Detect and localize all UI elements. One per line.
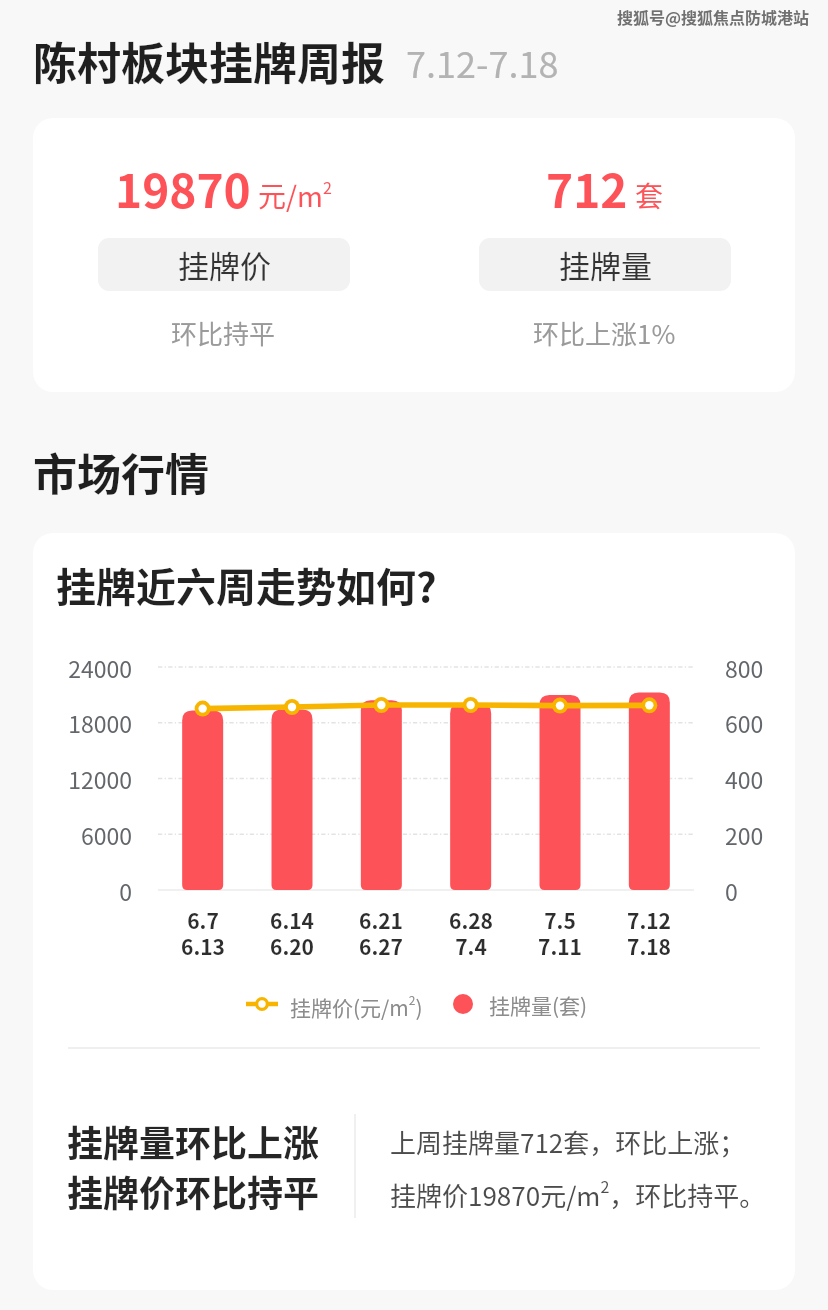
button[interactable]: 挂牌量 (479, 238, 731, 291)
staticText: 挂牌价19870元/m2，环比持平。 (390, 1174, 766, 1213)
staticText: 24000 (36, 651, 132, 684)
staticText: 7.5 (500, 905, 620, 935)
staticText: 市场行情 (33, 440, 209, 504)
staticText: 挂牌近六周走势如何? (56, 556, 437, 614)
staticText: 上周挂牌量712套，环比上涨； (390, 1123, 746, 1161)
staticText: 挂牌价(元/m2) (290, 991, 423, 1022)
button[interactable]: 挂牌价 (98, 238, 350, 291)
staticText: 7.12 (589, 905, 709, 935)
staticText: 6.7 (143, 905, 263, 935)
staticText: 6.27 (321, 931, 441, 961)
staticText: 7.18 (589, 931, 709, 961)
staticText: 712 (546, 155, 628, 222)
staticText: 0 (36, 874, 132, 907)
staticText: 搜狐号@搜狐焦点防城港站 (617, 5, 810, 28)
staticText: 18000 (36, 706, 132, 739)
staticText: 800 (725, 651, 769, 684)
button[interactable]: 挂牌量(套) (453, 988, 572, 1020)
staticText: 7.4 (411, 931, 531, 961)
staticText: 6000 (36, 818, 132, 851)
staticText: 陈村板块挂牌周报 (33, 29, 385, 93)
staticText: 600 (725, 706, 769, 739)
staticText: 6.28 (411, 905, 531, 935)
staticText: 0 (725, 874, 769, 907)
staticText: 套 (635, 175, 664, 216)
staticText: 200 (725, 818, 769, 851)
staticText: 挂牌量(套) (489, 990, 588, 1020)
staticText: 挂牌量 (559, 242, 652, 287)
staticText: 挂牌价 (178, 242, 271, 287)
staticText: 7.11 (500, 931, 620, 961)
staticText: 6.21 (321, 905, 441, 935)
staticText: 环比持平 (171, 314, 276, 352)
staticText: 元/m2 (258, 175, 332, 216)
staticText: 挂牌量环比上涨 (67, 1115, 320, 1167)
staticText: 挂牌价环比持平 (67, 1165, 320, 1217)
button[interactable]: 挂牌价(元/m2) (240, 988, 405, 1020)
staticText: 6.14 (232, 905, 352, 935)
staticText: 400 (725, 762, 769, 795)
staticText: 环比上涨1% (533, 314, 676, 352)
staticText: 6.13 (143, 931, 263, 961)
staticText: 7.12-7.18 (406, 36, 559, 88)
staticText: 12000 (36, 762, 132, 795)
staticText: 19870 (115, 155, 251, 222)
staticText: 6.20 (232, 931, 352, 961)
